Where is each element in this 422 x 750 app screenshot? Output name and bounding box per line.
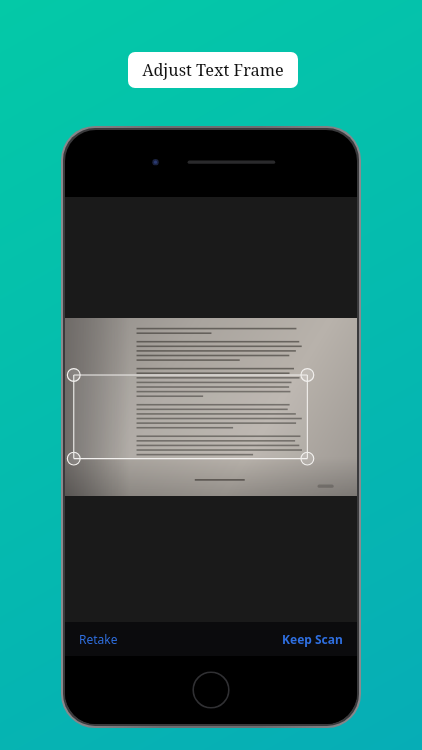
button[interactable]: Retake [65,625,132,653]
button[interactable]: Home [192,671,230,709]
staticText: Adjust Text Frame [142,59,284,81]
staticText: Retake [79,631,118,647]
button[interactable]: Keep Scan [268,625,357,653]
staticText: Keep Scan [282,631,343,647]
button[interactable]: Adjust text frame [65,318,357,496]
